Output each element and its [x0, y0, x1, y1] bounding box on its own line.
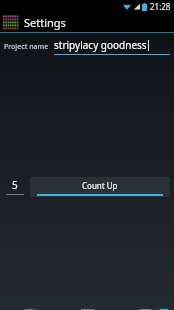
staticText: 5	[12, 178, 18, 192]
staticText: Count Up	[82, 180, 118, 191]
staticText: stripylacy goodness	[54, 38, 147, 52]
staticText: Project name	[4, 42, 49, 52]
staticText: 21:28	[150, 1, 171, 12]
button[interactable]: 5	[4, 178, 26, 195]
staticText: Settings	[24, 15, 66, 30]
button[interactable]: Count Up	[30, 177, 170, 197]
button[interactable]: Settings	[0, 13, 174, 32]
button[interactable]: Project name	[4, 38, 170, 55]
